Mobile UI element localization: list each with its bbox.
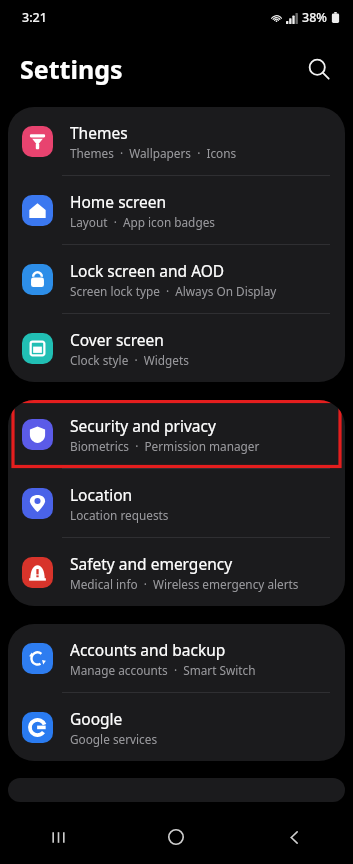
button[interactable]: Lock screen and AOD xyxy=(8,245,345,313)
staticText: Clock style · Widgets xyxy=(70,352,189,368)
staticText: Home screen xyxy=(70,191,167,212)
staticText: Accounts and backup xyxy=(70,639,226,660)
staticText: Layout · App icon badges xyxy=(70,214,215,230)
staticText: Screen lock type · Always On Display xyxy=(70,283,277,299)
button[interactable]: Home xyxy=(117,810,235,864)
staticText: 38% xyxy=(302,9,327,26)
staticText: Manage accounts · Smart Switch xyxy=(70,662,256,678)
staticText: Location requests xyxy=(70,507,169,523)
button[interactable]: Cover screen xyxy=(8,314,345,382)
staticText: Google xyxy=(70,708,123,729)
staticText: Themes xyxy=(70,122,128,143)
staticText: 3:21 xyxy=(22,9,47,26)
button[interactable]: Themes xyxy=(8,107,345,175)
staticText: Safety and emergency xyxy=(70,553,233,574)
button[interactable]: Home screen xyxy=(8,176,345,244)
button[interactable]: Search xyxy=(297,47,341,91)
staticText: Medical info · Wireless emergency alerts xyxy=(70,576,299,592)
staticText: Location xyxy=(70,484,133,505)
staticText: Security and privacy xyxy=(70,415,216,436)
staticText: Lock screen and AOD xyxy=(70,260,225,281)
button[interactable]: Location xyxy=(8,469,345,537)
staticText: Settings xyxy=(20,52,123,86)
button[interactable]: Recents xyxy=(0,810,117,864)
button[interactable]: Safety and emergency xyxy=(8,538,345,606)
button[interactable]: Accounts and backup xyxy=(8,624,345,692)
staticText: Google services xyxy=(70,731,158,747)
button[interactable]: Google xyxy=(8,693,345,761)
staticText: Biometrics · Permission manager xyxy=(70,438,260,454)
staticText: Cover screen xyxy=(70,329,164,350)
staticText: Themes · Wallpapers · Icons xyxy=(70,145,237,161)
button[interactable]: Security and privacy xyxy=(8,400,345,468)
button[interactable]: Back xyxy=(235,810,353,864)
